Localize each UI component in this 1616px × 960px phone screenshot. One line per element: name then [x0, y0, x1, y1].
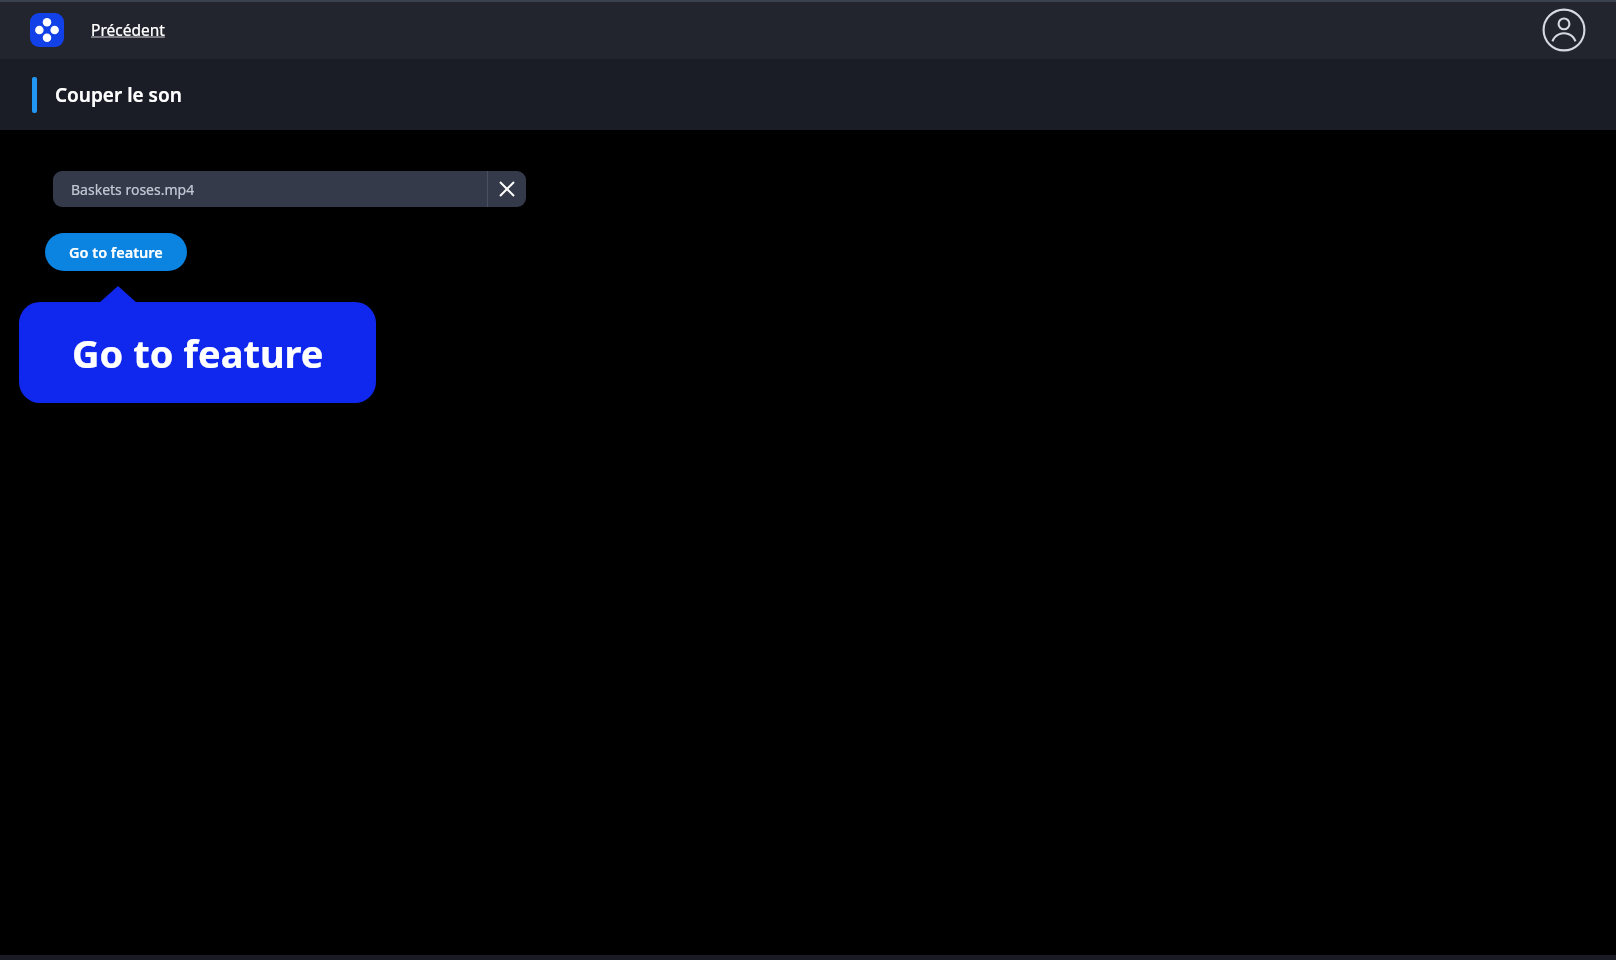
button[interactable]: Account [1538, 4, 1590, 56]
button[interactable]: Précédent [89, 13, 167, 46]
staticText: Couper le son [55, 82, 182, 108]
button[interactable]: Go to feature [45, 233, 187, 271]
staticText: Go to feature [72, 327, 324, 379]
button[interactable]: Go to feature [19, 286, 376, 403]
button[interactable]: Logo [30, 13, 64, 47]
button[interactable]: Clear [488, 171, 526, 207]
staticText: Go to feature [69, 242, 163, 262]
staticText: Précédent [91, 19, 165, 40]
button[interactable]: Baskets roses.mp4 [53, 171, 526, 207]
staticText: Baskets roses.mp4 [71, 180, 195, 199]
